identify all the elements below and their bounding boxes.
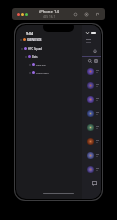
staticText: iPhone 14 bbox=[39, 9, 59, 15]
button[interactable]: Member 6 bbox=[82, 134, 101, 148]
button[interactable]: HFC Squad bbox=[21, 45, 77, 52]
button[interactable]: Minimise bbox=[21, 13, 24, 16]
button[interactable]: Search bbox=[88, 59, 92, 63]
button[interactable]: Close bbox=[17, 13, 20, 16]
staticText: iOS 16.1 bbox=[43, 15, 56, 19]
staticText: train-ing bbox=[36, 63, 46, 66]
button[interactable]: Member 5 bbox=[82, 120, 101, 134]
staticText: Bots bbox=[32, 55, 38, 59]
staticText: GENESIS bbox=[27, 37, 42, 42]
button[interactable]: Zoom bbox=[25, 13, 28, 16]
staticText: HFC Squad bbox=[28, 47, 43, 51]
button[interactable]: Messages bbox=[92, 181, 97, 186]
staticText: Lunch Recs bbox=[36, 71, 49, 74]
staticText: 9:04 bbox=[26, 31, 34, 36]
button[interactable]: Bots bbox=[25, 53, 81, 60]
button[interactable]: Member 8 bbox=[82, 162, 101, 176]
button[interactable]: train-ing bbox=[29, 61, 85, 68]
button[interactable]: GENESIS bbox=[20, 36, 76, 43]
button[interactable]: Lunch Recs bbox=[29, 69, 85, 76]
button[interactable]: Member 7 bbox=[82, 148, 101, 162]
button[interactable]: Member 4 bbox=[82, 106, 101, 120]
button[interactable]: Take screenshot bbox=[84, 12, 89, 17]
button[interactable]: Home bbox=[93, 49, 97, 53]
button[interactable]: Member 3 bbox=[82, 92, 101, 106]
button[interactable]: Inbox bbox=[94, 59, 98, 63]
button[interactable]: Member 1 bbox=[82, 64, 101, 78]
button[interactable]: Member 2 bbox=[82, 78, 101, 92]
button[interactable]: More options bbox=[95, 12, 100, 17]
button[interactable]: Rotate device bbox=[73, 12, 78, 17]
